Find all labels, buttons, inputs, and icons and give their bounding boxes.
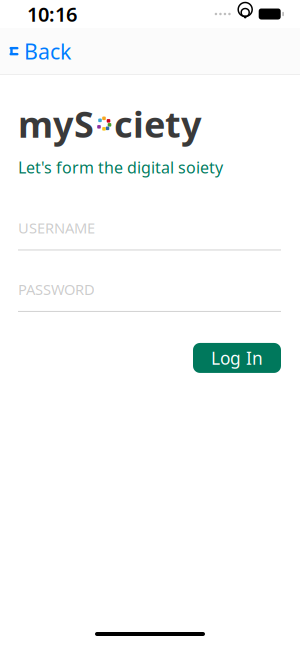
staticText: Back: [24, 37, 71, 65]
staticText: 10:16: [27, 1, 77, 27]
staticText: Let's form the digital soiety: [18, 157, 223, 178]
button[interactable]: USERNAME: [18, 218, 281, 250]
button[interactable]: Back: [0, 28, 85, 74]
staticText: Log In: [211, 346, 263, 369]
staticText: ciety: [114, 100, 202, 148]
button[interactable]: PASSWORD: [18, 279, 281, 312]
staticText: PASSWORD: [18, 279, 95, 299]
staticText: myS: [18, 100, 94, 148]
button[interactable]: Log In: [193, 343, 281, 373]
staticText: USERNAME: [18, 218, 95, 237]
